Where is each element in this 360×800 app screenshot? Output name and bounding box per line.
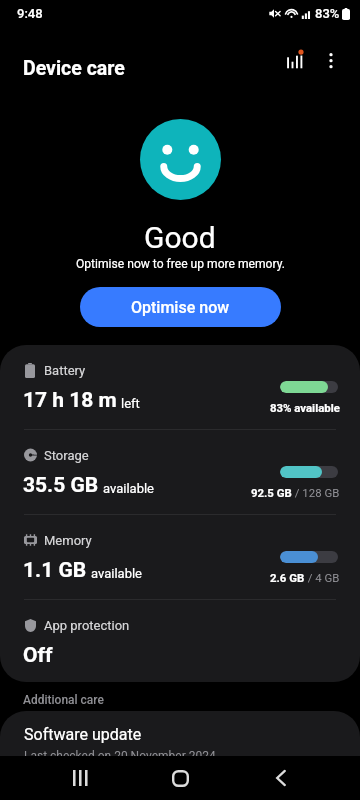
button[interactable]: Storage — [0, 430, 360, 514]
button[interactable]: Back — [261, 756, 301, 800]
staticText: / 128 GB — [292, 486, 340, 499]
button[interactable]: App protection — [0, 600, 360, 682]
staticText: Device care — [23, 57, 125, 80]
staticText: 35.5 GB — [23, 473, 99, 498]
staticText: available — [91, 566, 142, 581]
button[interactable]: Optimise now — [80, 287, 281, 327]
staticText: Battery — [44, 363, 86, 378]
staticText: left — [121, 396, 140, 411]
staticText: 83% available — [270, 401, 340, 414]
staticText: App protection — [44, 618, 130, 633]
staticText: 2.6 GB — [270, 571, 305, 584]
button[interactable]: Home — [160, 756, 200, 800]
staticText: / 4 GB — [305, 571, 340, 584]
staticText: Software update — [24, 725, 142, 744]
button[interactable]: Battery — [0, 345, 360, 429]
staticText: 9:48 — [17, 6, 43, 21]
staticText: 83% — [315, 6, 340, 21]
staticText: Last checked on 20 November 2024 — [24, 749, 216, 763]
staticText: Off — [23, 643, 53, 668]
staticText: available — [103, 481, 154, 496]
staticText: Good — [144, 220, 216, 255]
staticText: Memory — [44, 533, 92, 548]
staticText: Additional care — [23, 693, 104, 707]
button[interactable]: More options — [309, 39, 353, 83]
staticText: 17 h 18 m — [23, 388, 117, 413]
staticText: Optimise now to free up more memory. — [76, 257, 285, 271]
staticText: 92.5 GB — [251, 486, 292, 499]
button[interactable]: Memory — [0, 515, 360, 599]
button[interactable]: Usage history — [273, 39, 317, 83]
button[interactable]: Software update — [0, 711, 360, 800]
staticText: Storage — [44, 448, 89, 463]
button[interactable]: Recents — [60, 756, 100, 800]
staticText: 1.1 GB — [23, 558, 87, 583]
staticText: Optimise now — [131, 298, 230, 317]
